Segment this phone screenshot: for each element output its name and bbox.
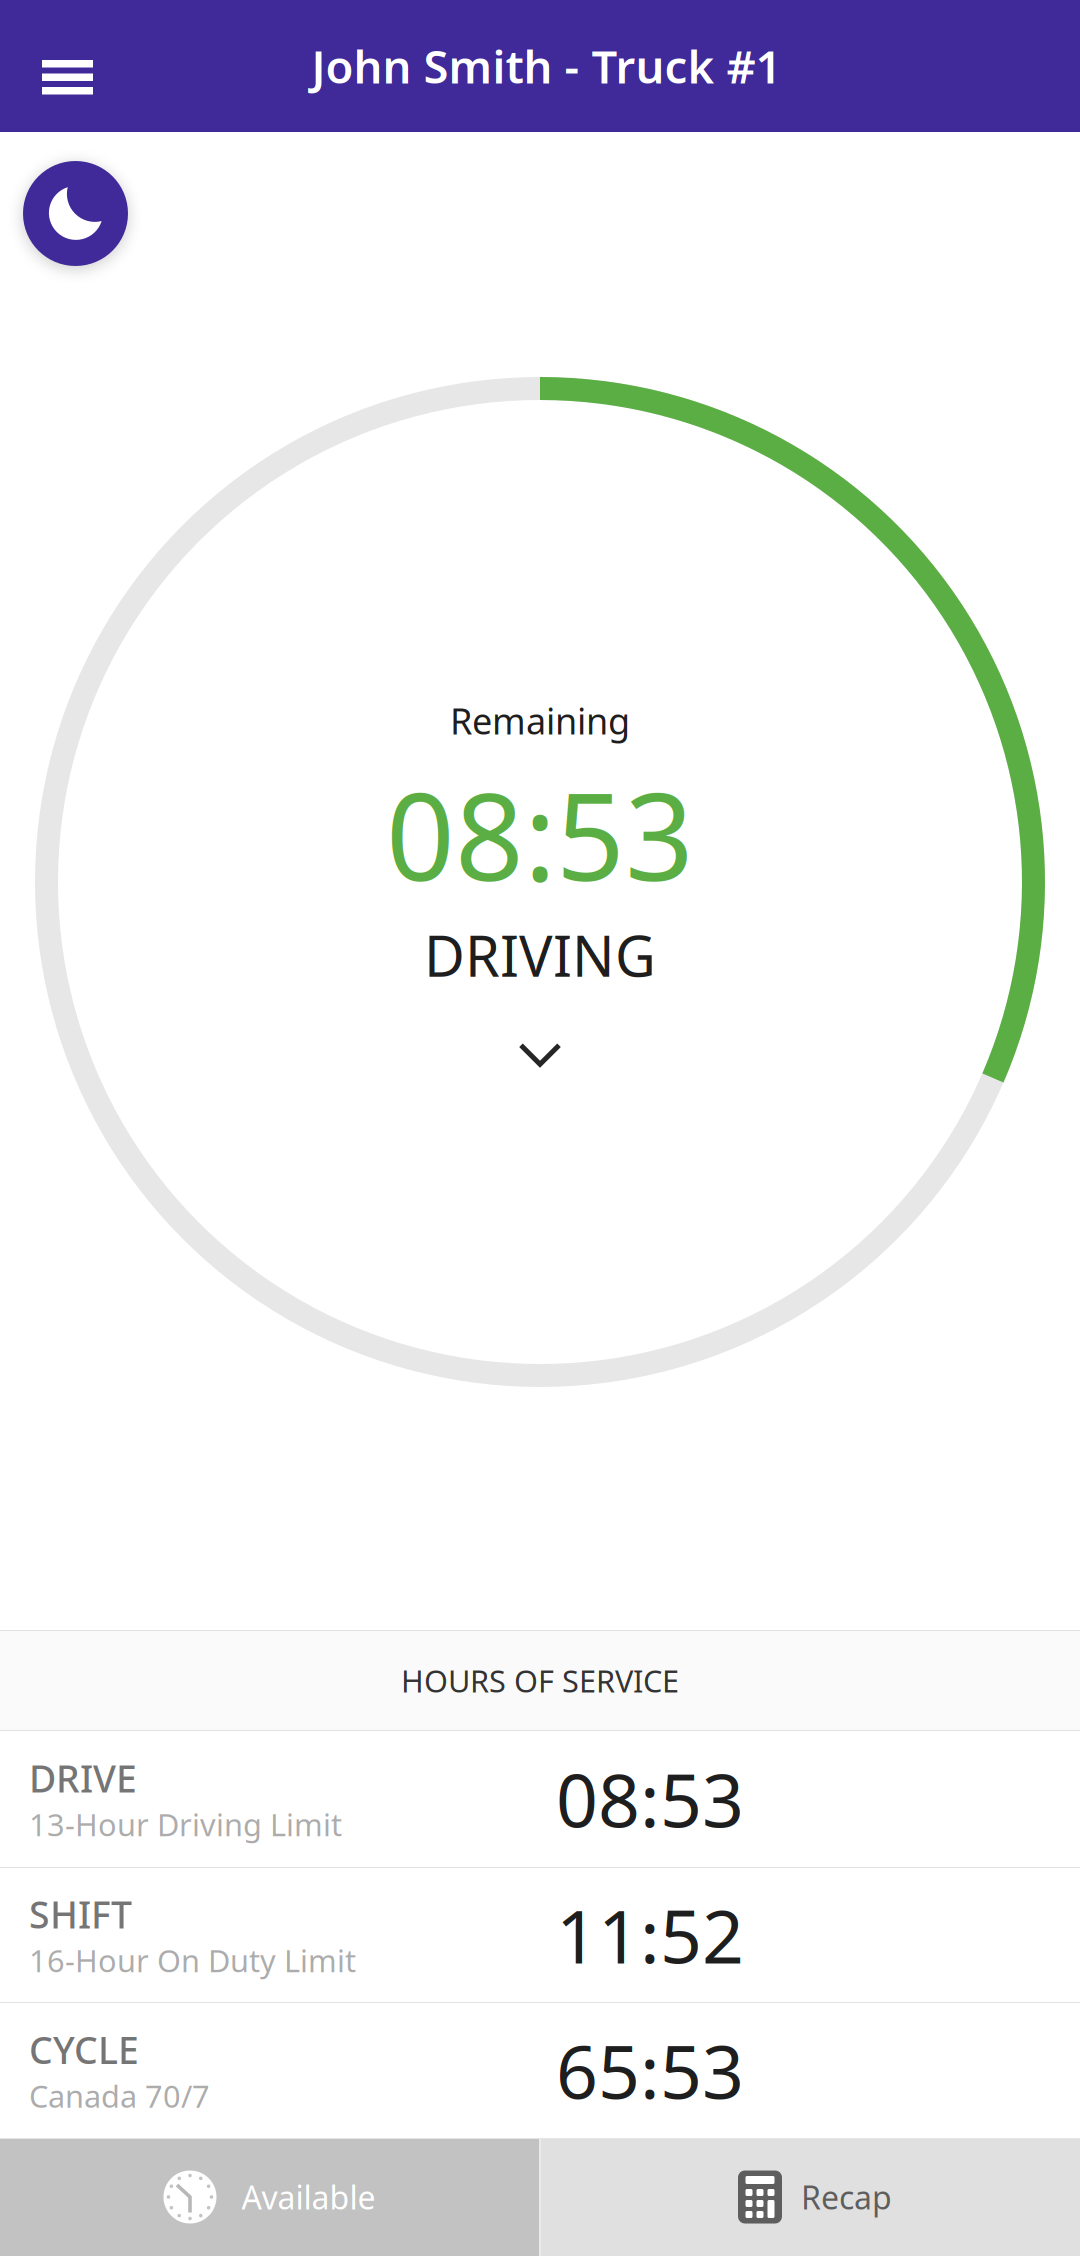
staticText: HOURS OF SERVICE: [401, 1660, 679, 1701]
button[interactable]: SHIFT: [0, 1868, 1080, 2002]
staticText: CYCLE: [29, 2025, 139, 2074]
staticText: 08:53: [556, 1750, 744, 1848]
staticText: Recap: [801, 2176, 892, 2218]
staticText: DRIVING: [424, 918, 656, 992]
button[interactable]: DRIVE: [0, 1731, 1080, 1867]
button[interactable]: Sleeper berth status: [23, 161, 128, 266]
button[interactable]: CYCLE: [0, 2003, 1080, 2138]
staticText: 65:53: [556, 2022, 744, 2119]
button[interactable]: Available: [0, 2138, 539, 2256]
staticText: 16-Hour On Duty Limit: [29, 1940, 356, 1981]
staticText: 08:53: [386, 754, 694, 914]
button[interactable]: Recap: [541, 2138, 1080, 2256]
staticText: Canada 70/7: [29, 2075, 210, 2116]
staticText: Remaining: [450, 697, 630, 744]
staticText: DRIVE: [29, 1753, 137, 1803]
button[interactable]: Remaining: [386, 697, 694, 1067]
staticText: 11:52: [556, 1886, 744, 1984]
staticText: John Smith - Truck #1: [311, 36, 781, 96]
button[interactable]: Menu: [0, 0, 131, 132]
staticText: Available: [241, 2176, 375, 2218]
staticText: 13-Hour Driving Limit: [29, 1804, 342, 1845]
staticText: SHIFT: [29, 1889, 132, 1939]
